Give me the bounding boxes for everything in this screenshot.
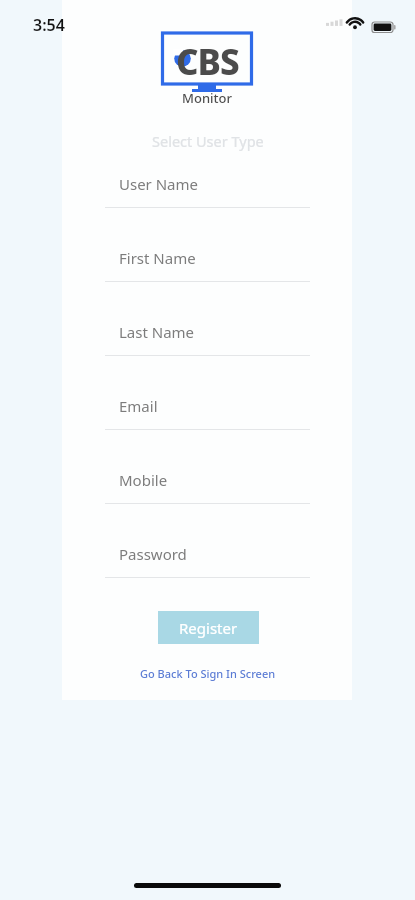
- staticText: Select User Type: [152, 131, 264, 151]
- staticText: Last Name: [119, 322, 195, 342]
- staticText: 3:54: [33, 14, 65, 36]
- button[interactable]: User Name: [105, 166, 310, 208]
- staticText: Email: [119, 396, 158, 416]
- button[interactable]: First Name: [105, 240, 310, 282]
- staticText: CBS: [176, 38, 239, 86]
- staticText: First Name: [119, 248, 196, 268]
- button[interactable]: Mobile: [105, 462, 310, 504]
- staticText: Password: [119, 544, 187, 564]
- button[interactable]: Last Name: [105, 314, 310, 356]
- button[interactable]: Email: [105, 388, 310, 430]
- staticText: Mobile: [119, 470, 168, 490]
- button[interactable]: Password: [105, 536, 310, 578]
- staticText: Register: [179, 618, 238, 638]
- staticText: Go Back To Sign In Screen: [140, 666, 276, 681]
- button[interactable]: Select User Type: [105, 129, 310, 153]
- button[interactable]: Register: [158, 611, 259, 644]
- button[interactable]: Go Back To Sign In Screen: [105, 663, 310, 683]
- staticText: Monitor: [182, 89, 232, 107]
- staticText: User Name: [119, 174, 199, 194]
